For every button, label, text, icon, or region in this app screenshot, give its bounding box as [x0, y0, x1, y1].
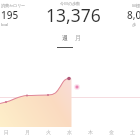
- button[interactable]: 今日の歩数: [60, 1, 81, 6]
- button[interactable]: 土: [127, 129, 137, 135]
- staticText: 日: [4, 129, 9, 135]
- staticText: 歩: [132, 22, 136, 27]
- button[interactable]: 木: [85, 129, 95, 135]
- button[interactable]: 月: [22, 129, 32, 135]
- button[interactable]: 目標歩数: [127, 3, 140, 27]
- staticText: 月: [75, 34, 81, 42]
- button[interactable]: 日: [1, 129, 11, 135]
- staticText: 消費カロリー: [1, 3, 26, 8]
- staticText: 木: [88, 129, 93, 135]
- staticText: 週: [62, 34, 68, 42]
- staticText: 金: [109, 129, 114, 135]
- button[interactable]: 週: [57, 34, 73, 48]
- staticText: 水: [67, 129, 72, 135]
- button[interactable]: 火: [43, 129, 53, 135]
- staticText: 目標歩数: [132, 3, 140, 8]
- button[interactable]: 消費カロリー: [1, 3, 26, 27]
- staticText: 195: [1, 8, 19, 22]
- staticText: 土: [130, 129, 135, 135]
- staticText: 月: [25, 129, 30, 135]
- staticText: 今日の歩数: [60, 1, 81, 6]
- button[interactable]: 月: [75, 34, 87, 42]
- staticText: 火: [46, 129, 51, 135]
- staticText: 8,000: [127, 8, 140, 22]
- staticText: 13,376: [46, 3, 101, 27]
- button[interactable]: 水: [64, 129, 74, 135]
- button[interactable]: 金: [106, 129, 116, 135]
- staticText: kcal: [1, 22, 9, 27]
